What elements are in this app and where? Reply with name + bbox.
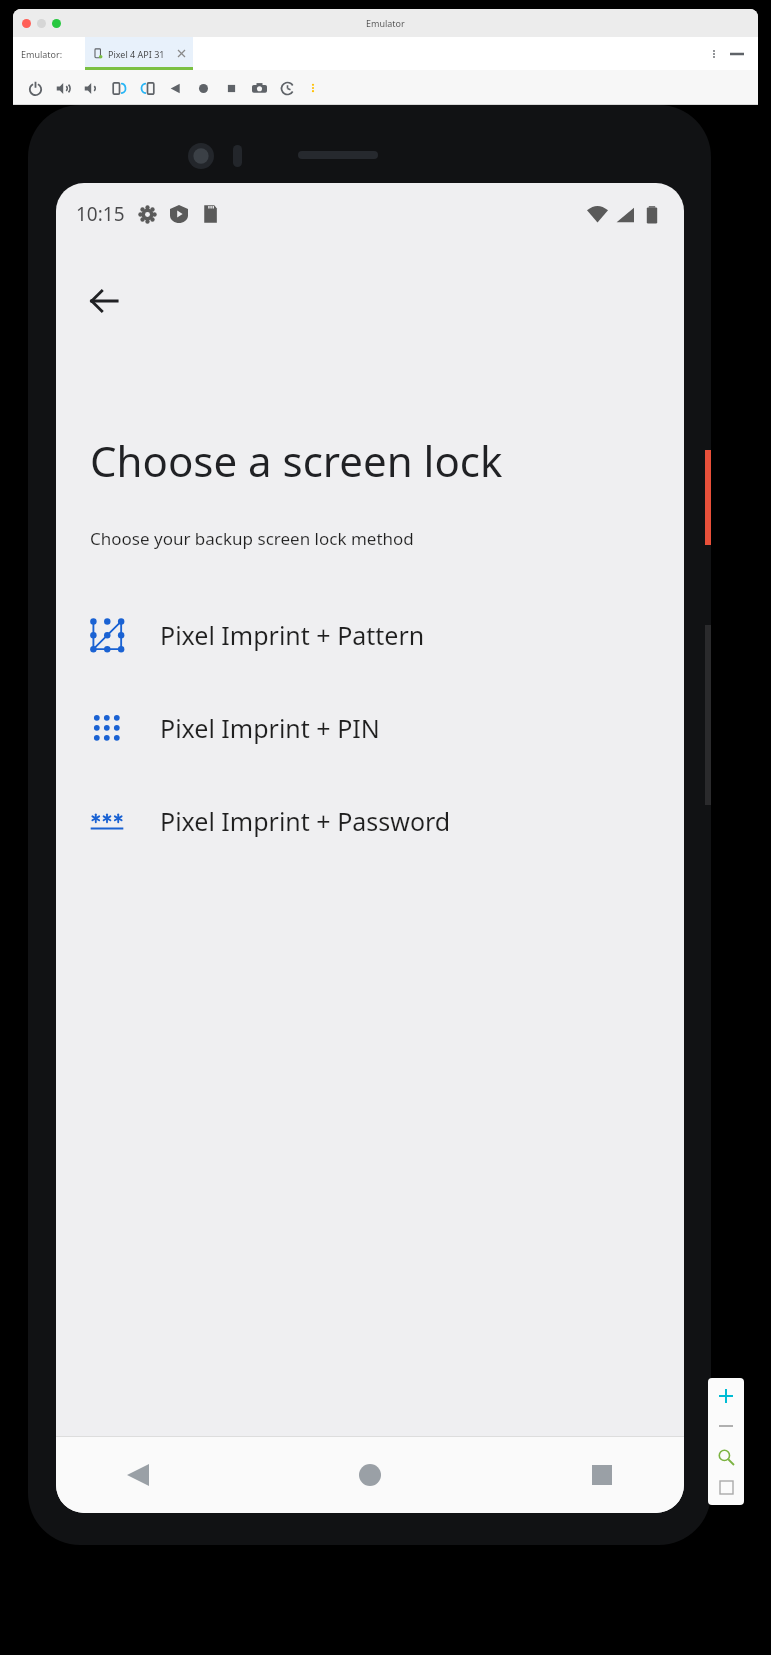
staticText: Emulator: bbox=[21, 48, 63, 60]
button[interactable]: Overview bbox=[578, 1451, 626, 1499]
button[interactable]: Overview bbox=[221, 78, 241, 98]
staticText: Pixel Imprint + PIN bbox=[160, 711, 380, 745]
staticText: 10:15 bbox=[76, 201, 125, 227]
staticText: Pixel Imprint + Password bbox=[160, 804, 451, 838]
button[interactable]: Back bbox=[165, 78, 185, 98]
button[interactable]: Home bbox=[346, 1451, 394, 1499]
button[interactable] bbox=[22, 19, 31, 28]
button[interactable]: Back bbox=[114, 1451, 162, 1499]
button[interactable]: Zoom reset bbox=[713, 1444, 739, 1470]
staticText: Emulator bbox=[366, 17, 405, 29]
button[interactable]: Minimize bbox=[730, 47, 744, 61]
button[interactable]: History bbox=[277, 78, 297, 98]
button[interactable]: Volume down bbox=[81, 78, 101, 98]
button[interactable]: Fit to screen bbox=[713, 1474, 739, 1500]
button[interactable]: Pixel 4 API 31 bbox=[85, 37, 193, 70]
staticText: Choose a screen lock bbox=[90, 432, 503, 489]
button[interactable]: Zoom out bbox=[713, 1413, 739, 1439]
button[interactable]: Power bbox=[25, 78, 45, 98]
button[interactable]: Volume up bbox=[53, 78, 73, 98]
button[interactable]: Zoom in bbox=[713, 1383, 739, 1409]
button[interactable]: Home bbox=[193, 78, 213, 98]
button[interactable]: Close tab bbox=[178, 50, 185, 57]
button[interactable]: Pixel Imprint + PIN bbox=[56, 681, 684, 774]
button[interactable] bbox=[37, 19, 46, 28]
button[interactable]: Extended controls bbox=[305, 80, 321, 96]
button[interactable]: Pixel Imprint + Pattern bbox=[56, 588, 684, 681]
button[interactable]: Screenshot bbox=[249, 78, 269, 98]
button[interactable]: Pixel Imprint + Password bbox=[56, 774, 684, 867]
staticText: Choose your backup screen lock method bbox=[90, 527, 414, 550]
button[interactable]: More options bbox=[708, 48, 720, 60]
staticText: Pixel 4 API 31 bbox=[108, 48, 165, 60]
button[interactable]: Rotate right bbox=[137, 78, 157, 98]
staticText: Pixel Imprint + Pattern bbox=[160, 618, 425, 652]
button[interactable] bbox=[52, 19, 61, 28]
button[interactable]: Navigate up bbox=[78, 275, 130, 327]
button[interactable]: Rotate left bbox=[109, 78, 129, 98]
